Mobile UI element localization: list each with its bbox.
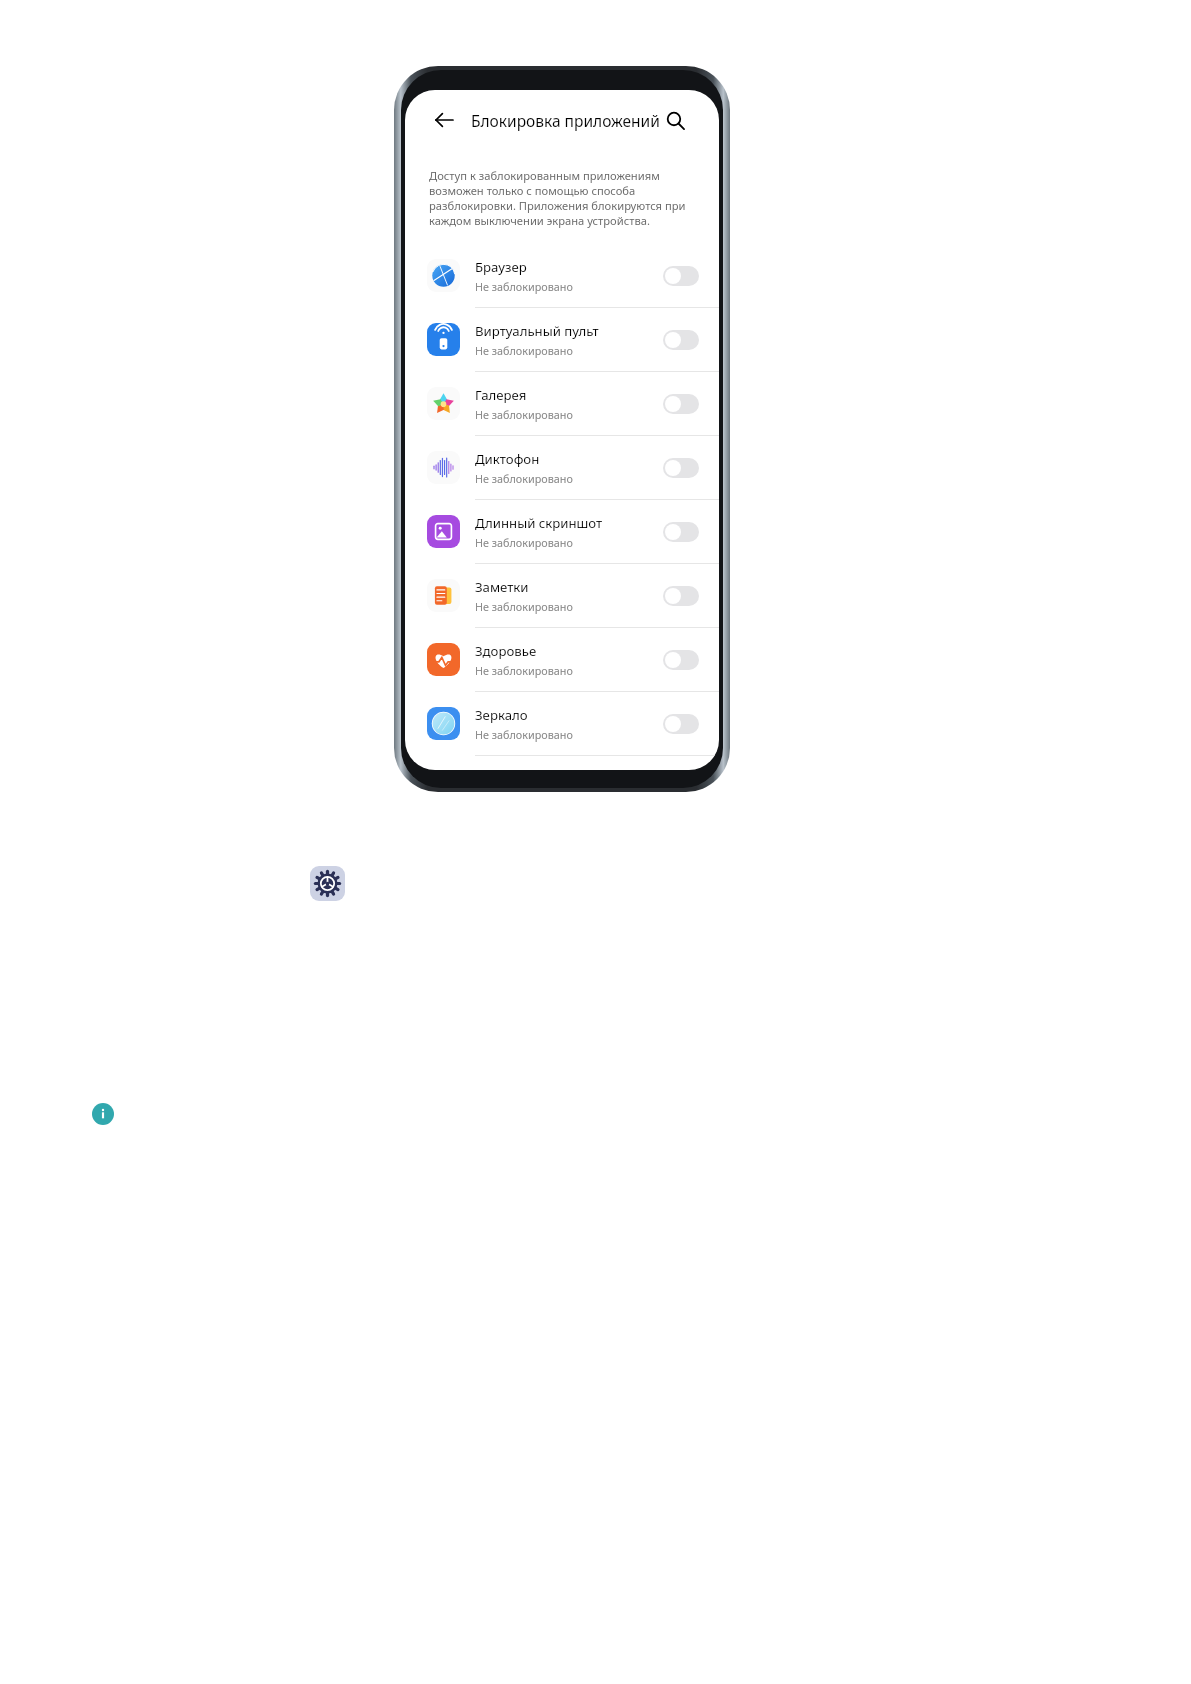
button[interactable]: Search [660,105,690,135]
button[interactable]: Settings [310,866,345,901]
staticText: Не заблокировано [475,599,573,614]
button[interactable]: Toggle lock [663,586,699,606]
button[interactable]: Toggle lock [663,714,699,734]
staticText: Диктофон [475,450,540,468]
button[interactable]: Toggle lock [663,650,699,670]
button[interactable]: Заметки [405,564,719,628]
button[interactable]: Диктофон [405,436,719,500]
button[interactable]: Toggle lock [663,458,699,478]
staticText: Галерея [475,386,527,404]
staticText: Заметки [475,578,529,596]
button[interactable]: Back [429,105,459,135]
button[interactable]: Toggle lock [663,330,699,350]
staticText: Не заблокировано [475,535,573,550]
button[interactable]: Toggle lock [663,266,699,286]
button[interactable]: Information [92,1103,114,1125]
button[interactable]: Toggle lock [663,394,699,414]
button[interactable]: Здоровье [405,628,719,692]
staticText: Зеркало [475,706,528,724]
staticText: Не заблокировано [475,279,573,294]
staticText: Не заблокировано [475,471,573,486]
button[interactable]: Зеркало [405,692,719,756]
staticText: Блокировка приложений [471,110,660,131]
staticText: Доступ к заблокированным приложениям воз… [429,168,699,228]
button[interactable]: Галерея [405,372,719,436]
button[interactable]: Toggle lock [663,522,699,542]
staticText: Браузер [475,258,527,276]
staticText: Здоровье [475,642,537,660]
button[interactable]: Браузер [405,244,719,308]
staticText: Длинный скриншот [475,514,603,532]
button[interactable]: Длинный скриншот [405,500,719,564]
staticText: Не заблокировано [475,343,573,358]
button[interactable]: Виртуальный пульт [405,308,719,372]
staticText: Не заблокировано [475,407,573,422]
staticText: Виртуальный пульт [475,322,599,340]
staticText: Не заблокировано [475,663,573,678]
staticText: Не заблокировано [475,727,573,742]
